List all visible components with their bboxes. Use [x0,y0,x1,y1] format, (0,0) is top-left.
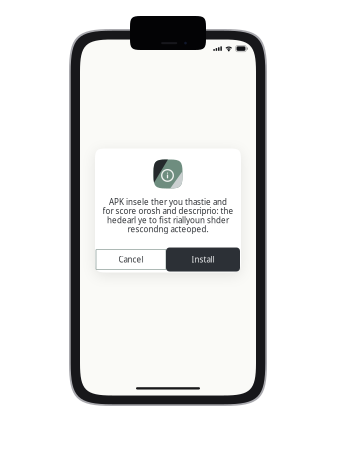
staticText: APK insele ther you thastie and [109,196,227,207]
staticText: for score orosh and descriprio: the [102,206,233,216]
staticText: hedearl ye to fist riallyoun shder [107,215,229,225]
staticText: Install [191,254,214,265]
button[interactable]: Install [166,247,240,271]
button[interactable]: Cancel [96,249,166,269]
staticText: Cancel [118,254,143,265]
staticText: rescondng acteoped. [127,224,208,234]
